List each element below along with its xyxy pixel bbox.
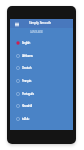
staticText: Simply Smooth (29, 21, 52, 25)
button[interactable]: English (10, 36, 73, 49)
staticText: Português (22, 92, 34, 96)
button[interactable]: Português (10, 87, 73, 100)
staticText: LANGUAGE (30, 30, 43, 34)
button[interactable]: Afrikaans (10, 49, 73, 62)
staticText: English (22, 41, 31, 45)
button[interactable]: Open navigation menu (12, 20, 21, 28)
button[interactable]: Deutsch (10, 61, 73, 74)
staticText: Kiswahili (22, 104, 32, 108)
button[interactable]: Français (10, 74, 73, 87)
staticText: Français (22, 79, 32, 83)
staticText: Afrikaans (22, 54, 33, 58)
button[interactable]: Kiswahili (10, 99, 73, 112)
staticText: Deutsch (22, 66, 32, 70)
button[interactable]: isiZulu (10, 112, 73, 125)
staticText: isiZulu (22, 117, 30, 121)
